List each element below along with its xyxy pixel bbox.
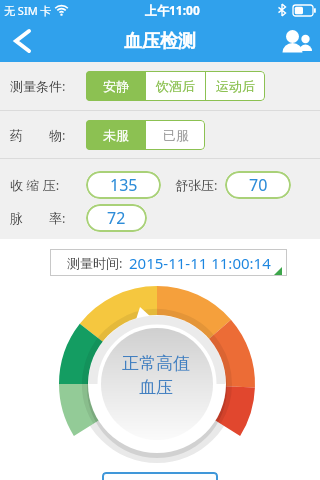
staticText: 饮酒后 [156,78,195,94]
staticText: 安静 [103,78,129,94]
staticText: 未服 [103,127,129,143]
staticText: 2015-11-11 11:00:14 [129,253,271,273]
staticText: 135 [110,174,138,196]
button[interactable] [274,20,320,62]
staticText: 测量条件: [10,77,66,95]
staticText: 运动后 [216,78,255,94]
staticText: 药 物: [10,126,66,144]
button[interactable]: 70 [225,171,291,199]
staticText: 脉 率: [10,209,66,227]
staticText: 已服 [163,127,189,143]
button[interactable]: 72 [86,204,147,232]
button[interactable] [0,20,44,62]
staticText: 正常高值 [122,353,190,374]
staticText: 血压检测 [124,30,196,53]
staticText: 72 [107,207,126,229]
button[interactable]: 未服 [86,120,145,150]
staticText: 无 SIM 卡 [4,3,52,18]
button[interactable] [102,472,218,480]
staticText: 舒张压: [175,176,218,194]
button[interactable]: 运动后 [206,71,265,101]
staticText: 上午11:00 [145,2,200,18]
button[interactable]: 饮酒后 [146,71,205,101]
staticText: 血压 [139,377,173,398]
staticText: 70 [249,174,268,196]
staticText: 收 缩 压: [10,176,60,194]
staticText: 测量时间: [67,254,123,272]
button[interactable]: 安静 [86,71,145,101]
button[interactable]: 135 [86,171,161,199]
button[interactable]: 已服 [146,120,205,150]
button[interactable]: 测量时间: [50,249,287,276]
